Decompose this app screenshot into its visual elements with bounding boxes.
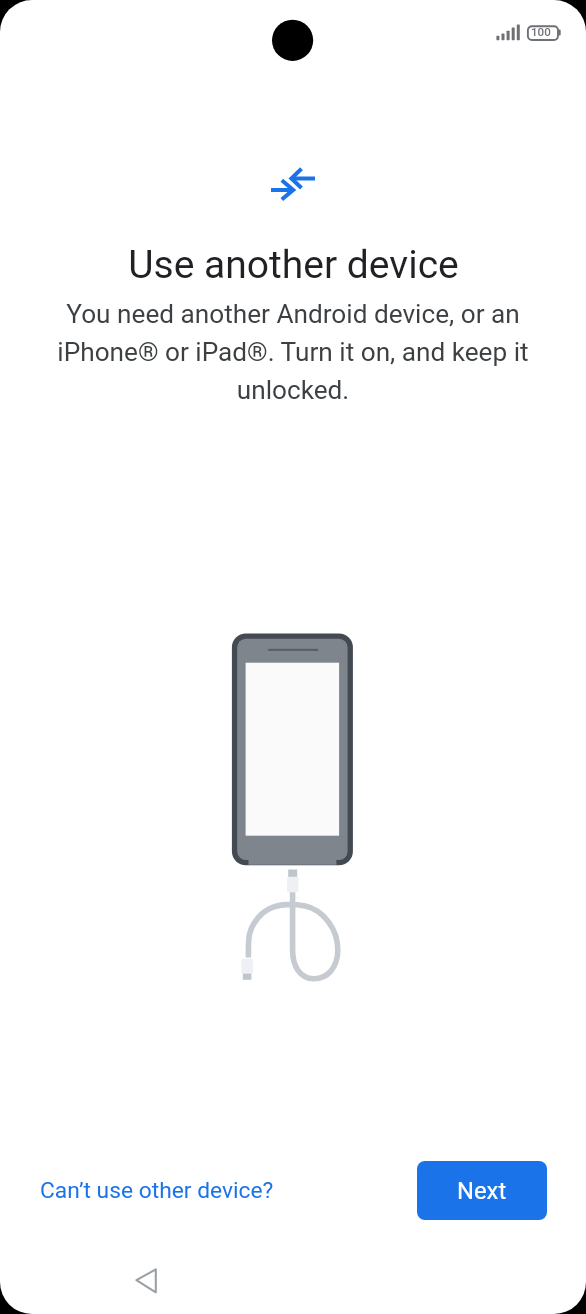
button[interactable]: Back (120, 1254, 170, 1304)
button[interactable]: Can’t use other device? (24, 1165, 290, 1216)
staticText: Next (457, 1177, 507, 1205)
staticText: You need another Android device, or an i… (47, 299, 539, 405)
staticText: Use another device (128, 242, 459, 288)
staticText: Can’t use other device? (40, 1177, 274, 1204)
button[interactable]: Next (417, 1161, 547, 1220)
staticText: 100 (531, 25, 551, 39)
